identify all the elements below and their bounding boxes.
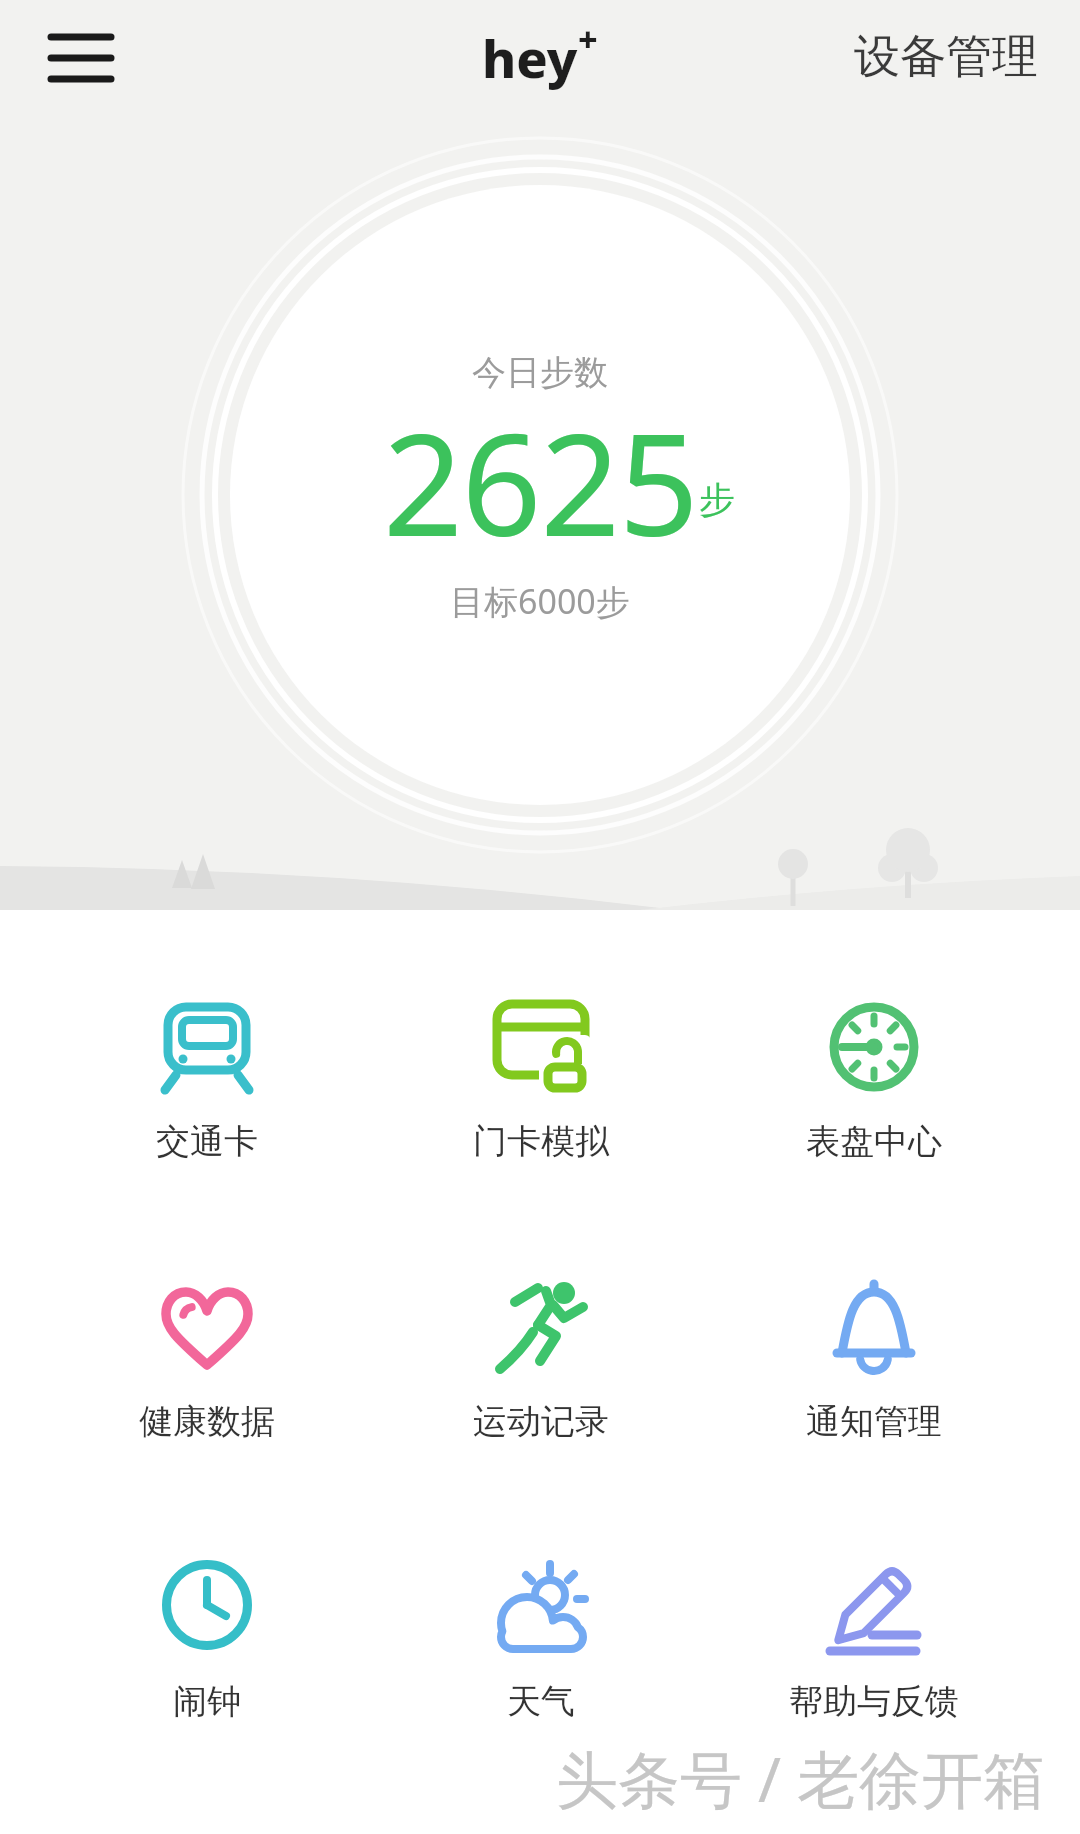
staticText: + <box>578 16 598 62</box>
button[interactable] <box>36 18 126 98</box>
staticText: 帮助与反馈 <box>789 1680 959 1723</box>
staticText: 步 <box>699 477 735 522</box>
staticText: 交通卡 <box>156 1120 258 1163</box>
button[interactable]: 设备管理 <box>854 28 1038 86</box>
staticText: 表盘中心 <box>806 1120 942 1163</box>
staticText: 天气 <box>507 1680 575 1723</box>
staticText: 2625 <box>383 386 698 577</box>
button[interactable]: 闹钟 <box>40 1559 374 1723</box>
staticText: 运动记录 <box>473 1400 609 1443</box>
button[interactable]: 天气 <box>374 1559 707 1723</box>
button[interactable]: 通知管理 <box>707 1279 1040 1443</box>
staticText: 闹钟 <box>173 1680 241 1723</box>
button[interactable]: 交通卡 <box>40 999 374 1163</box>
staticText: 设备管理 <box>854 28 1038 86</box>
staticText: 健康数据 <box>139 1400 275 1443</box>
button[interactable]: 表盘中心 <box>707 999 1040 1163</box>
staticText: 头条号 / 老徐开箱 <box>556 1736 1046 1821</box>
button[interactable]: 健康数据 <box>40 1279 374 1443</box>
staticText: hey <box>482 22 578 93</box>
staticText: 门卡模拟 <box>473 1120 609 1163</box>
button[interactable]: 门卡模拟 <box>374 999 707 1163</box>
staticText: 今日步数 <box>472 351 608 394</box>
staticText: 通知管理 <box>806 1400 942 1443</box>
staticText: 目标6000步 <box>450 578 630 624</box>
button[interactable]: 帮助与反馈 <box>707 1559 1040 1723</box>
button[interactable]: 运动记录 <box>374 1279 707 1443</box>
